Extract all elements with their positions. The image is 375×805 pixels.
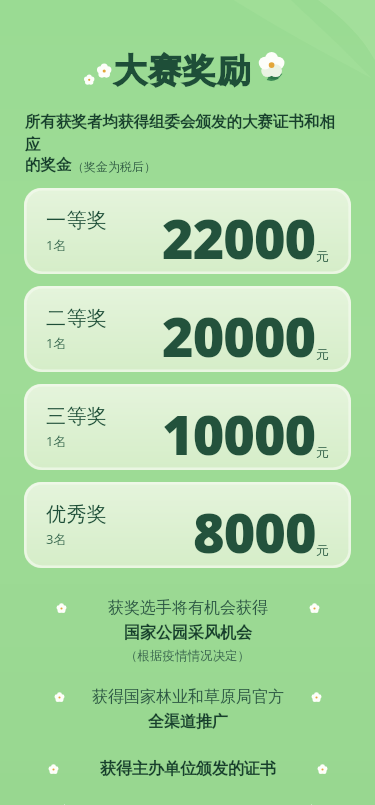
staticText: 8000 <box>193 495 316 568</box>
button[interactable]: 一等奖 <box>24 188 351 274</box>
button[interactable]: 二等奖 <box>24 286 351 372</box>
staticText: （根据疫情情况决定） <box>125 648 250 664</box>
staticText: 优秀奖 <box>46 502 108 527</box>
staticText: 元 <box>316 346 329 362</box>
staticText: 全渠道推广 <box>148 712 228 732</box>
button[interactable]: 三等奖 <box>24 384 351 470</box>
staticText: （奖金为税后） <box>72 159 156 174</box>
staticText: 获得主办单位颁发的证书 <box>100 759 276 779</box>
staticText: 所有获奖者均获得组委会颁发的大赛证书和相应 <box>25 112 350 155</box>
staticText: 元 <box>316 542 329 558</box>
staticText: 元 <box>316 248 329 264</box>
staticText: 20000 <box>162 299 316 372</box>
staticText: 3名 <box>46 530 67 548</box>
staticText: 一等奖 <box>46 208 108 233</box>
staticText: 元 <box>316 444 329 460</box>
staticText: 1名 <box>46 236 67 254</box>
staticText: 二等奖 <box>46 306 108 331</box>
staticText: 获得国家林业和草原局官方 <box>92 687 284 707</box>
staticText: 三等奖 <box>46 404 108 429</box>
button[interactable]: 优秀奖 <box>24 482 351 568</box>
staticText: 国家公园采风机会 <box>124 623 252 643</box>
staticText: 1名 <box>46 432 67 450</box>
staticText: 获奖选手将有机会获得 <box>108 598 268 618</box>
staticText: 1名 <box>46 334 67 352</box>
staticText: 的奖金 <box>25 155 72 175</box>
staticText: 大赛奖励 <box>113 50 251 92</box>
staticText: 22000 <box>162 201 316 274</box>
staticText: 10000 <box>162 397 316 470</box>
